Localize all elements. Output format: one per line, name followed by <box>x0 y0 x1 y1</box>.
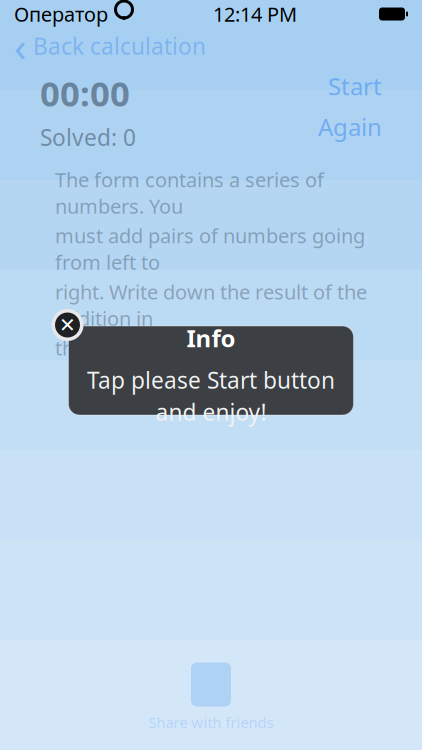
staticText: Share with friends <box>148 712 273 732</box>
button[interactable]: Close <box>50 308 84 342</box>
staticText: right. Write down the result of the addi… <box>55 278 367 331</box>
staticText: ‹ <box>14 19 26 72</box>
staticText: 00:00 <box>40 70 130 116</box>
staticText: Оператор <box>14 1 108 27</box>
staticText: Start <box>328 70 382 102</box>
staticText: the end. <box>55 334 130 361</box>
staticText: ✕ <box>59 314 76 336</box>
staticText: Solved: 0 <box>40 122 136 152</box>
staticText: Back calculation <box>33 31 206 61</box>
button[interactable]: Back <box>0 28 422 64</box>
staticText: Tap please Start button <box>87 365 335 395</box>
button[interactable]: Start <box>328 70 382 102</box>
staticText: and enjoy! <box>155 397 266 427</box>
staticText: The form contains a series of numbers. Y… <box>55 166 324 219</box>
staticText: must add pairs of numbers going from lef… <box>55 222 365 275</box>
staticText: Info <box>186 322 235 354</box>
button[interactable]: Again <box>318 111 382 143</box>
staticText: Again <box>318 111 382 143</box>
staticText: 12:14 PM <box>213 1 297 27</box>
